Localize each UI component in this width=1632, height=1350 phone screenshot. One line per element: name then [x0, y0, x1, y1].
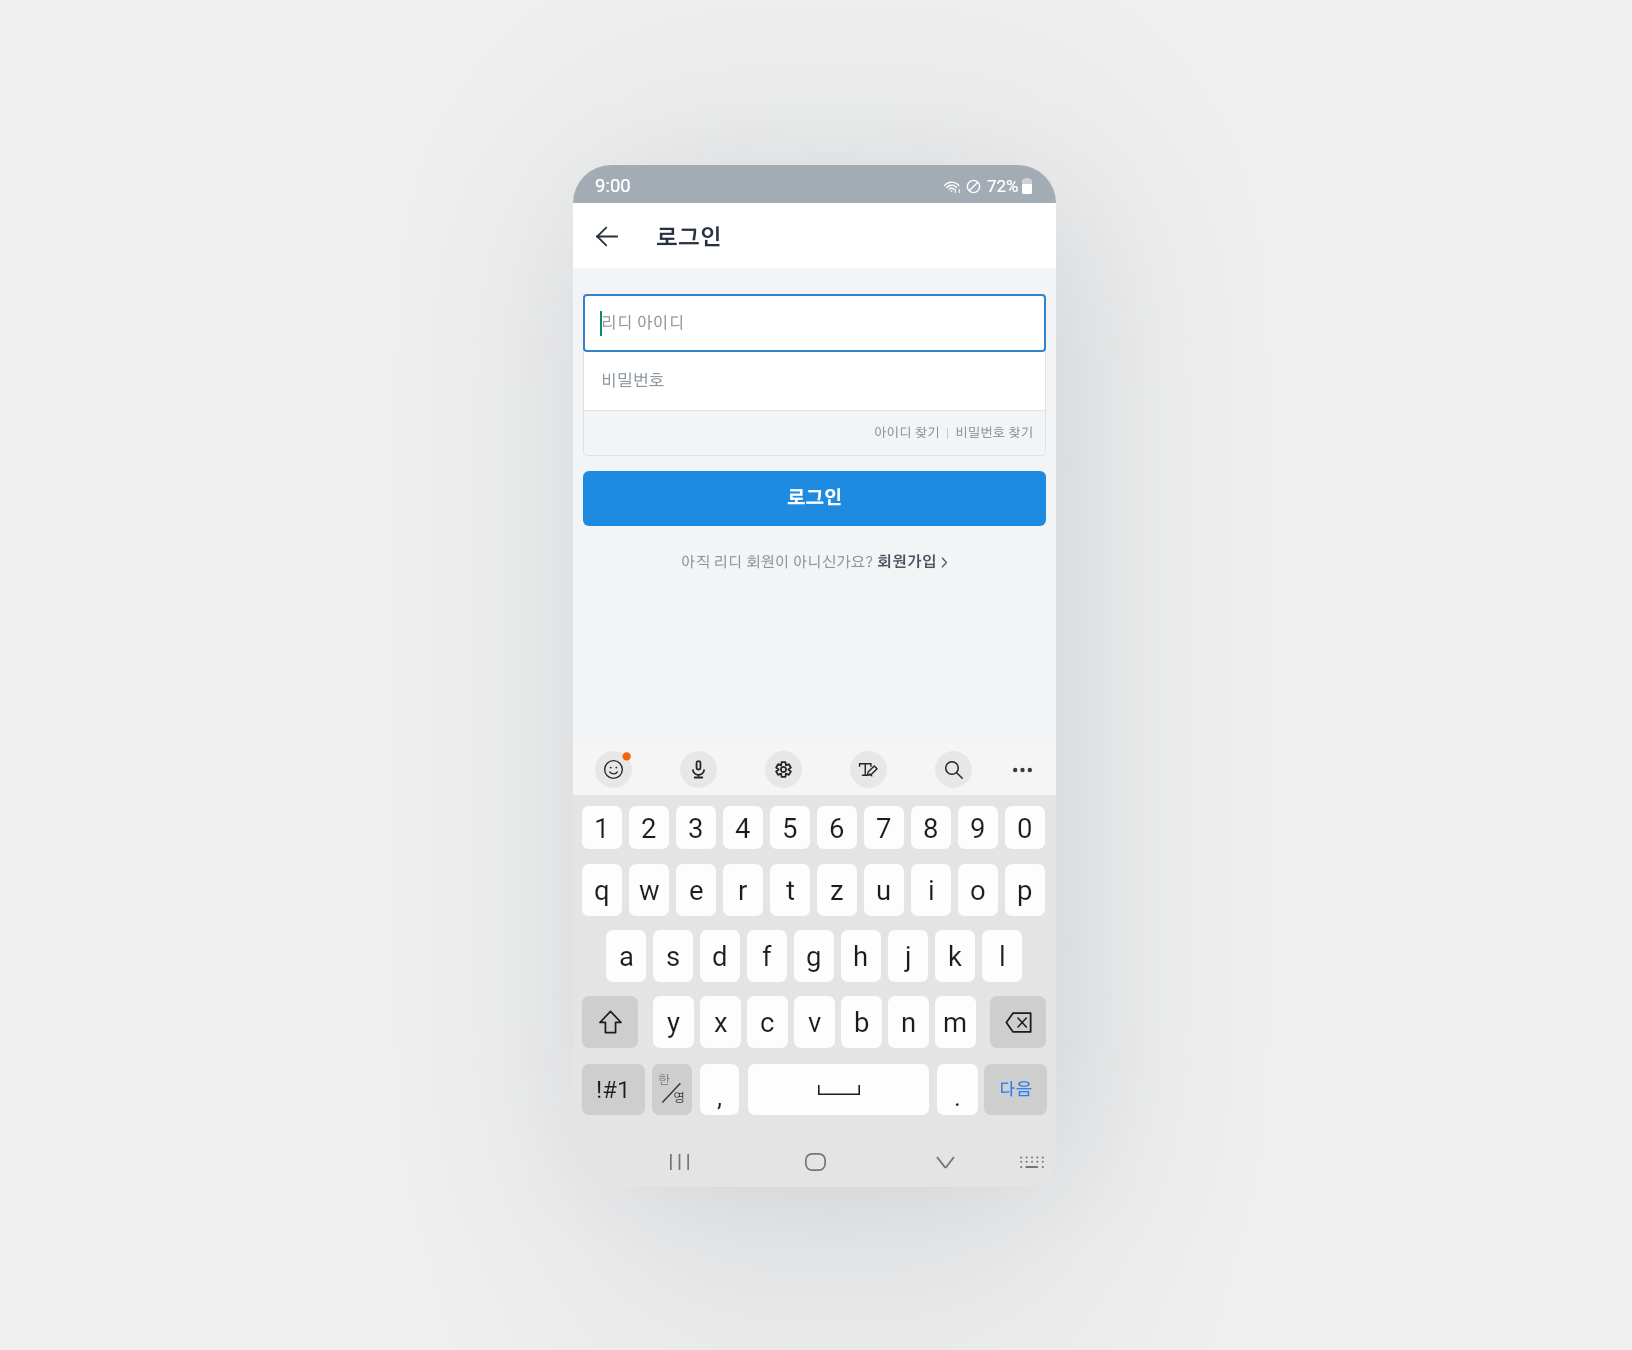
button[interactable]: 6: [817, 806, 857, 849]
staticText: 72%: [987, 176, 1019, 196]
button[interactable]: m: [935, 996, 976, 1048]
button[interactable]: s: [653, 930, 693, 982]
button[interactable]: Emoji: [595, 751, 632, 788]
staticText: e: [689, 874, 704, 906]
button[interactable]: Shift: [582, 996, 638, 1048]
button[interactable]: k: [935, 930, 975, 982]
staticText: d: [712, 940, 728, 972]
staticText: 로그인: [787, 489, 843, 508]
staticText: 4: [735, 812, 751, 844]
staticText: ,: [717, 1082, 723, 1112]
staticText: l: [999, 940, 1006, 972]
button[interactable]: Voice input: [680, 751, 717, 788]
button[interactable]: c: [747, 996, 788, 1048]
button[interactable]: 7: [864, 806, 904, 849]
button[interactable]: w: [629, 864, 669, 916]
button[interactable]: n: [888, 996, 929, 1048]
button[interactable]: 2: [629, 806, 669, 849]
button[interactable]: Home: [795, 1142, 835, 1182]
staticText: 비밀번호: [601, 373, 665, 390]
button[interactable]: 비밀번호 찾기: [953, 427, 1036, 440]
button[interactable]: 1: [582, 806, 622, 849]
staticText: 아직 리디 회원이 아니신가요?: [681, 555, 877, 570]
staticText: 8: [923, 812, 939, 844]
button[interactable]: 다음: [984, 1064, 1047, 1115]
button[interactable]: 아이디 찾기: [872, 427, 942, 440]
button[interactable]: y: [653, 996, 694, 1048]
staticText: h: [853, 940, 869, 972]
button[interactable]: !#1: [582, 1064, 645, 1115]
staticText: v: [808, 1006, 822, 1038]
staticText: a: [619, 940, 634, 972]
button[interactable]: r: [723, 864, 763, 916]
button[interactable]: g: [794, 930, 834, 982]
staticText: x: [714, 1006, 728, 1038]
button[interactable]: l: [982, 930, 1022, 982]
button[interactable]: 아직 리디 회원이 아니신가요?: [573, 555, 1056, 570]
button[interactable]: Backspace: [990, 996, 1046, 1048]
staticText: m: [943, 1006, 968, 1038]
button[interactable]: 9: [958, 806, 998, 849]
staticText: 로그인: [656, 227, 722, 249]
button[interactable]: Search: [935, 751, 972, 788]
button[interactable]: d: [700, 930, 740, 982]
staticText: 5: [782, 812, 798, 844]
button[interactable]: e: [676, 864, 716, 916]
button[interactable]: 8: [911, 806, 951, 849]
staticText: q: [594, 874, 610, 906]
staticText: g: [806, 940, 822, 972]
button[interactable]: v: [794, 996, 835, 1048]
staticText: 3: [688, 812, 704, 844]
button[interactable]: p: [1005, 864, 1045, 916]
button[interactable]: t: [770, 864, 810, 916]
staticText: 영: [673, 1092, 686, 1105]
staticText: b: [854, 1006, 870, 1038]
button[interactable]: 리디 아이디: [583, 294, 1046, 352]
button[interactable]: 3: [676, 806, 716, 849]
button[interactable]: u: [864, 864, 904, 916]
button[interactable]: f: [747, 930, 787, 982]
button[interactable]: Space: [748, 1064, 929, 1115]
button[interactable]: Hide keyboard: [925, 1142, 965, 1182]
button[interactable]: Back: [585, 215, 627, 257]
staticText: !#1: [596, 1076, 631, 1104]
staticText: f: [762, 940, 772, 972]
button[interactable]: Handwriting: [850, 751, 887, 788]
button[interactable]: x: [700, 996, 741, 1048]
staticText: o: [970, 874, 986, 906]
button[interactable]: Settings: [765, 751, 802, 788]
button[interactable]: 로그인: [583, 471, 1046, 526]
staticText: 한: [658, 1074, 671, 1087]
button[interactable]: o: [958, 864, 998, 916]
button[interactable]: z: [817, 864, 857, 916]
staticText: j: [905, 940, 912, 972]
button[interactable]: a: [606, 930, 646, 982]
staticText: w: [639, 874, 660, 906]
button[interactable]: More options: [1004, 751, 1041, 788]
button[interactable]: b: [841, 996, 882, 1048]
button[interactable]: ,: [700, 1064, 739, 1115]
button[interactable]: h: [841, 930, 881, 982]
staticText: t: [786, 874, 795, 906]
staticText: 9:00: [595, 175, 631, 197]
staticText: z: [830, 874, 844, 906]
staticText: n: [901, 1006, 917, 1038]
button[interactable]: Language: [652, 1064, 692, 1115]
button[interactable]: 5: [770, 806, 810, 849]
staticText: u: [876, 874, 892, 906]
staticText: 1: [594, 812, 610, 844]
button[interactable]: Recent apps: [659, 1142, 699, 1182]
button[interactable]: q: [582, 864, 622, 916]
button[interactable]: 0: [1005, 806, 1045, 849]
button[interactable]: .: [937, 1064, 978, 1115]
staticText: 0: [1017, 812, 1033, 844]
button[interactable]: i: [911, 864, 951, 916]
staticText: 7: [876, 812, 892, 844]
button[interactable]: Change keyboard: [1012, 1142, 1052, 1182]
staticText: k: [948, 940, 962, 972]
staticText: i: [928, 874, 935, 906]
button[interactable]: 비밀번호: [583, 352, 1046, 410]
staticText: 다음: [999, 1081, 1033, 1098]
button[interactable]: j: [888, 930, 928, 982]
button[interactable]: 4: [723, 806, 763, 849]
